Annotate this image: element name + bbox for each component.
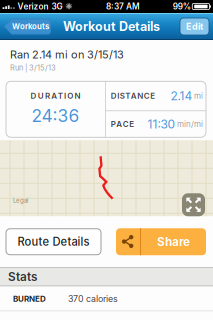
staticText: Route Details	[17, 235, 89, 249]
staticText: Share	[157, 235, 190, 249]
staticText: Ran 2.14 mi on 3/15/13	[10, 48, 124, 61]
staticText: Workout Details	[63, 19, 160, 34]
staticText: mi	[194, 91, 203, 101]
staticText: 8:37 AM	[106, 1, 140, 11]
staticText: 24:36	[31, 105, 79, 126]
staticText: PACE	[111, 119, 134, 129]
staticText: Workouts	[12, 22, 49, 31]
button[interactable]: Share	[116, 228, 206, 255]
staticText: Stats	[8, 270, 37, 284]
staticText: DURATION	[30, 91, 81, 101]
button[interactable]: Expand map	[182, 193, 205, 216]
staticText: min/mi	[177, 119, 203, 129]
staticText: 3G	[51, 1, 62, 11]
button[interactable]: Edit	[180, 18, 209, 35]
staticText: DISTANCE	[111, 91, 155, 101]
button[interactable]: Route Details	[6, 229, 101, 255]
staticText: Legal	[13, 197, 28, 204]
staticText: 370 calories	[68, 293, 118, 304]
staticText: BURNED	[13, 294, 46, 304]
staticText: 11:30	[147, 117, 175, 131]
staticText: 99%	[173, 1, 191, 11]
staticText: 2.14	[170, 89, 192, 103]
staticText: Edit	[186, 21, 203, 32]
button[interactable]: Workouts	[3, 18, 52, 35]
staticText: Run | 3/15/13	[10, 63, 56, 72]
staticText: Verizon	[17, 1, 48, 11]
